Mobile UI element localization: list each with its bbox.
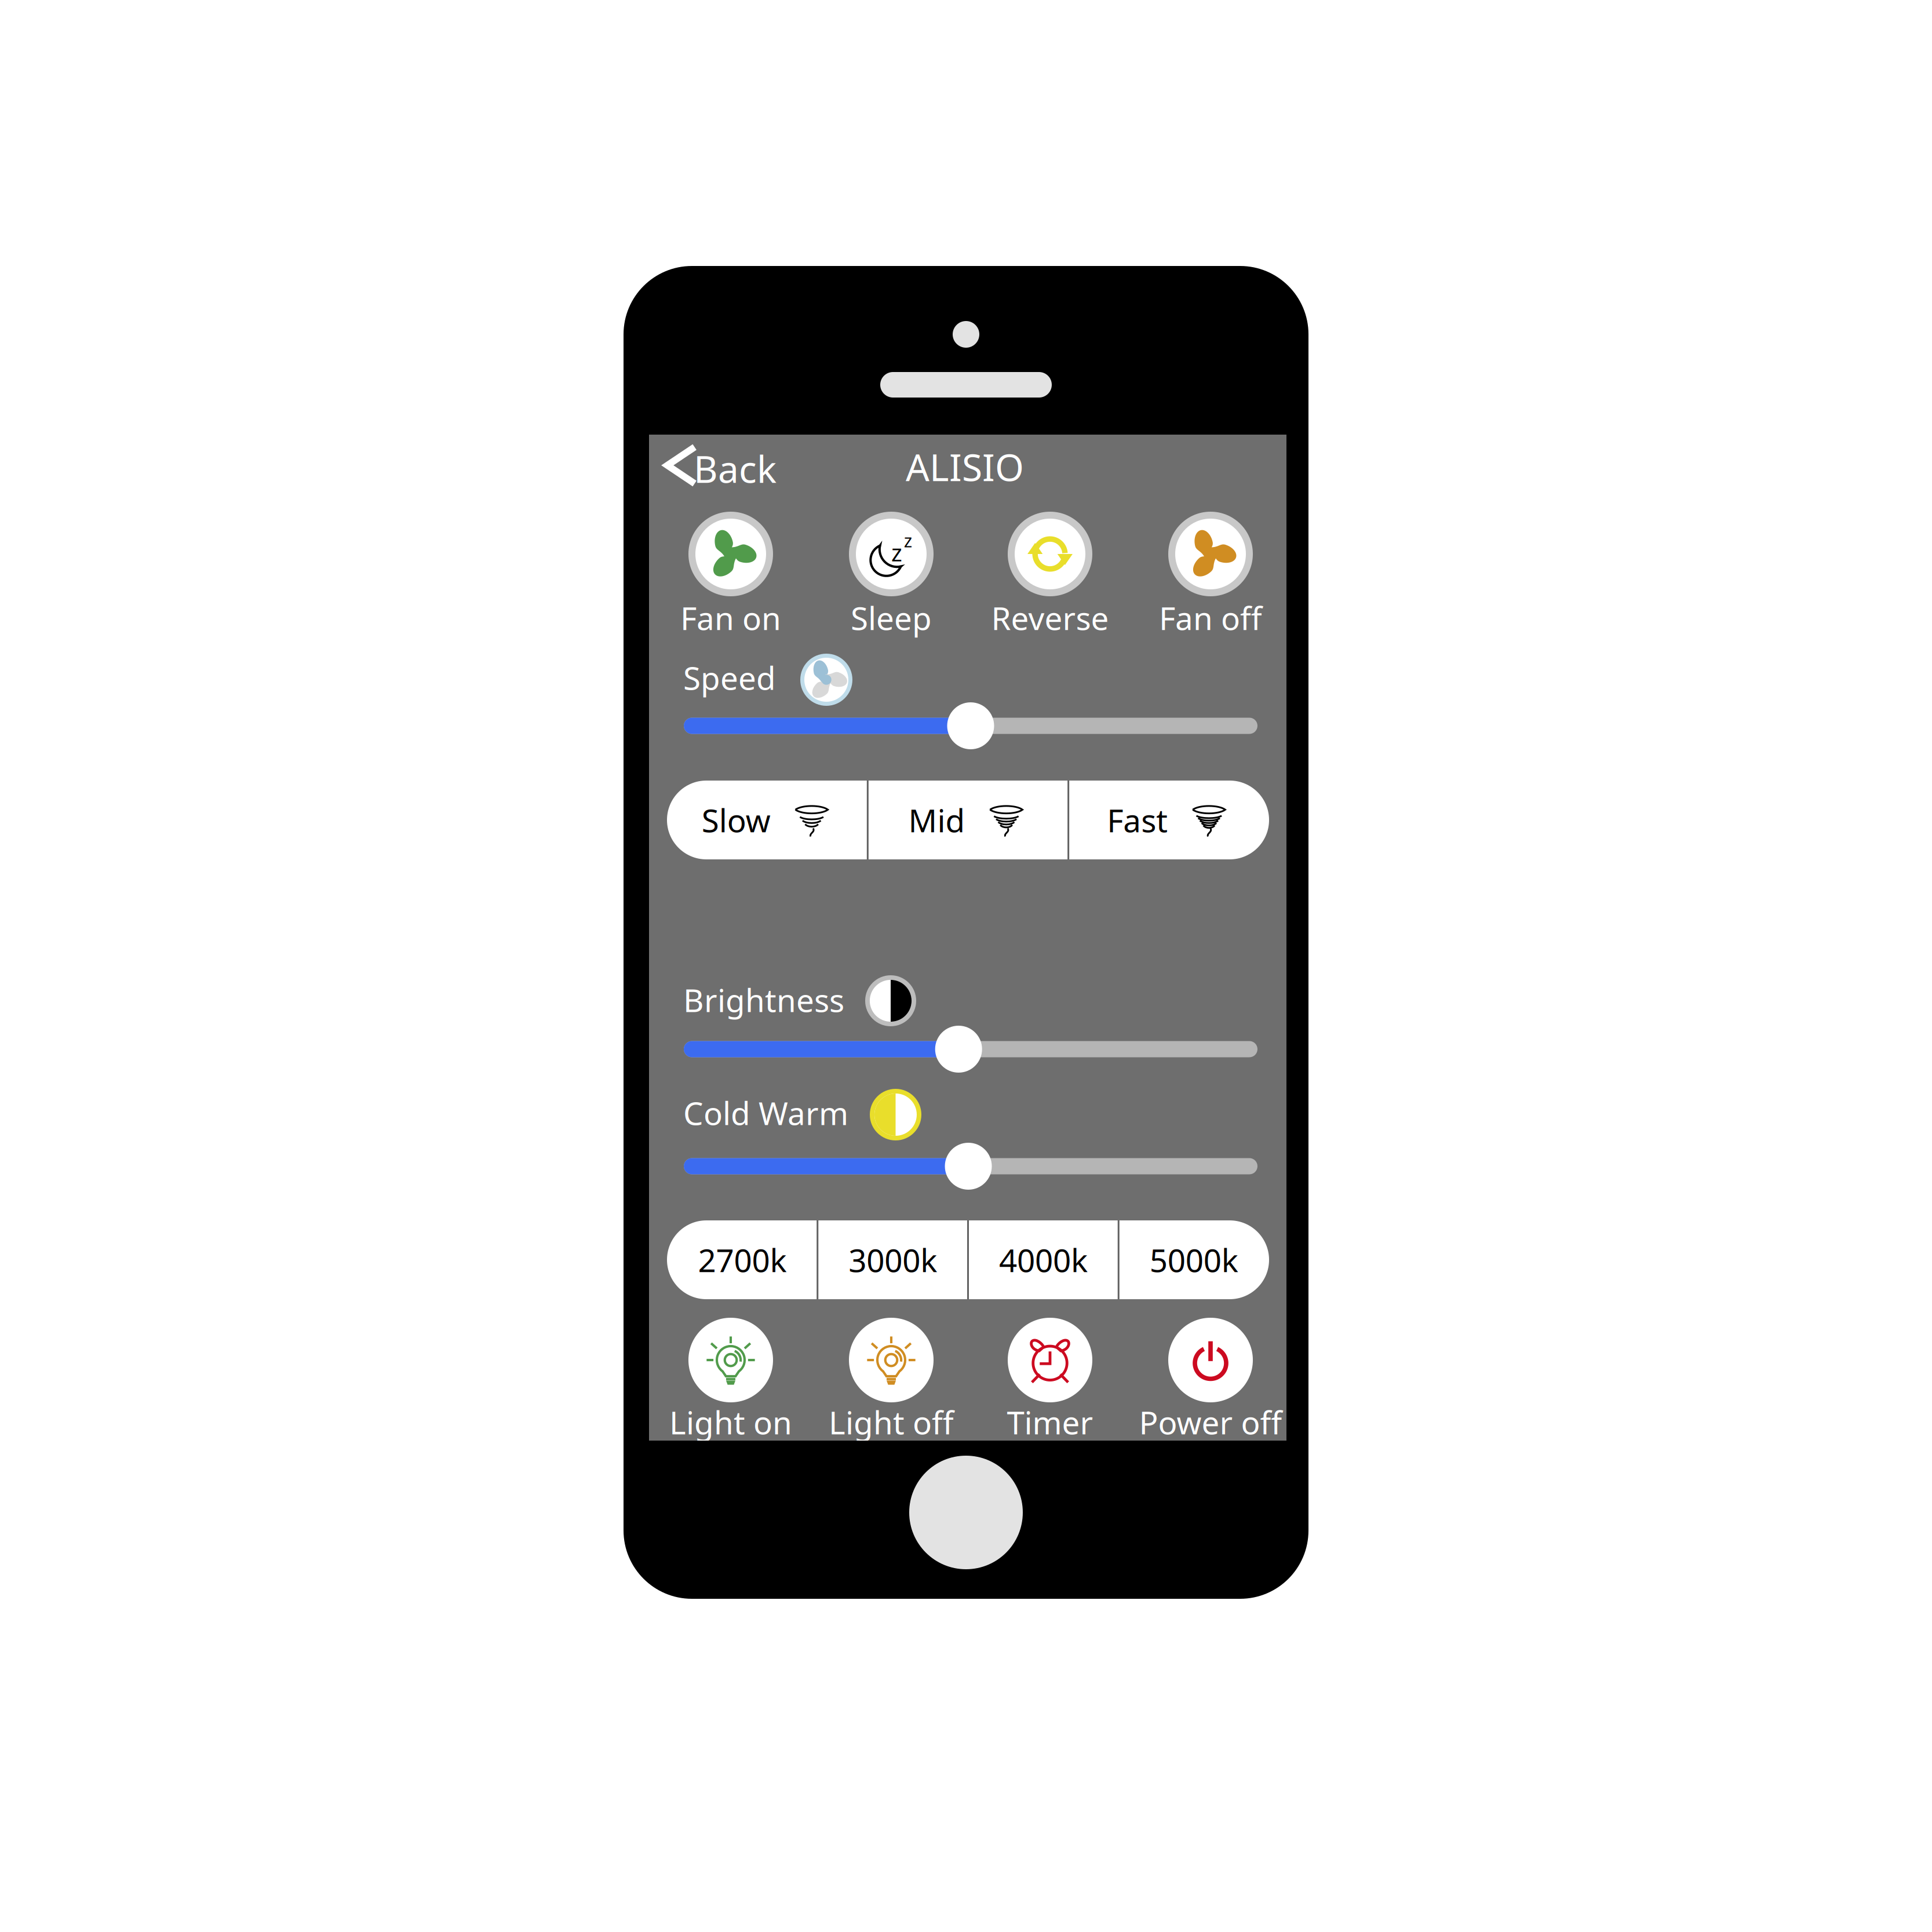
button[interactable]: Fast xyxy=(1068,781,1269,859)
button[interactable]: Timer xyxy=(971,1314,1129,1449)
button[interactable]: Slow xyxy=(667,781,868,859)
staticText: Fan on xyxy=(680,597,781,639)
button[interactable]: 3000k xyxy=(818,1220,968,1299)
button[interactable]: Light on xyxy=(652,1314,810,1449)
staticText: Timer xyxy=(1007,1401,1093,1443)
staticText: Mid xyxy=(908,799,965,841)
staticText: Sleep xyxy=(851,597,932,639)
staticText: Light off xyxy=(829,1401,954,1443)
button[interactable]: z xyxy=(812,505,970,650)
staticText: Brightness xyxy=(683,979,844,1021)
button[interactable]: Power off xyxy=(1132,1314,1289,1449)
staticText: Fast xyxy=(1107,799,1168,841)
staticText: 5000k xyxy=(1149,1239,1238,1281)
staticText: Reverse xyxy=(991,597,1109,639)
staticText: Light on xyxy=(669,1401,792,1443)
button[interactable]: Fan off xyxy=(1132,505,1289,650)
staticText: 3000k xyxy=(848,1239,937,1281)
button[interactable]: 4000k xyxy=(968,1220,1119,1299)
staticText: z xyxy=(891,537,902,568)
staticText: Speed xyxy=(683,657,776,699)
button[interactable]: 5000k xyxy=(1119,1220,1269,1299)
button[interactable]: Fan on xyxy=(652,505,810,650)
staticText: ALISIO xyxy=(906,442,1024,491)
staticText: Fan off xyxy=(1159,597,1262,639)
staticText: Slow xyxy=(702,799,771,841)
button[interactable]: 2700k xyxy=(667,1220,818,1299)
staticText: Power off xyxy=(1139,1401,1282,1443)
button[interactable]: Reverse xyxy=(971,505,1129,650)
button[interactable]: Mid xyxy=(868,781,1068,859)
staticText: Cold Warm xyxy=(683,1092,848,1134)
button[interactable]: Light off xyxy=(812,1314,970,1449)
staticText: 4000k xyxy=(999,1239,1088,1281)
button[interactable]: Back xyxy=(649,435,788,495)
staticText: z xyxy=(904,529,912,552)
staticText: Back xyxy=(694,444,777,493)
staticText: 2700k xyxy=(698,1239,787,1281)
